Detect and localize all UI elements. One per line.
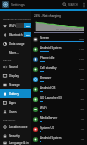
button[interactable]: Data usage (0, 39, 31, 48)
staticText: System UI (40, 126, 80, 130)
staticText: Users (9, 110, 17, 114)
staticText: Display (9, 74, 19, 78)
staticText: Phone idle (40, 56, 79, 60)
staticText: 12% (79, 57, 84, 60)
staticText: Apps (9, 101, 16, 105)
staticText: Browser (40, 76, 80, 80)
staticText: 4% (80, 87, 84, 90)
staticText: 2% (80, 107, 84, 110)
staticText: ON (26, 33, 30, 36)
staticText: Security (9, 134, 20, 138)
button[interactable]: Language & in (0, 140, 31, 145)
staticText: 1% (80, 137, 84, 140)
staticText: 3% (80, 97, 84, 100)
staticText: Bluetooth (9, 33, 23, 37)
staticText: Settings (11, 2, 25, 7)
button[interactable]: Security (0, 131, 31, 140)
button[interactable]: SEARCH (61, 2, 79, 7)
staticText: Location acce (9, 125, 28, 129)
staticText: Wi-Fi (40, 106, 80, 110)
staticText: SEARCH (68, 3, 78, 7)
button[interactable]: Battery (0, 89, 31, 98)
button[interactable]: System UI (31, 124, 87, 134)
staticText: 10% (79, 67, 84, 70)
button[interactable]: Users (0, 107, 31, 116)
staticText: Screen (40, 36, 79, 40)
button[interactable]: Browser (31, 74, 87, 84)
staticText: Wi-Fi (9, 24, 16, 28)
button[interactable]: Sound (0, 62, 31, 71)
staticText: Sound (9, 65, 18, 69)
button[interactable]: Phone idle (31, 54, 87, 64)
staticText: 2h 13m 45s on battery (56, 27, 83, 30)
staticText: Cell standby (40, 66, 79, 70)
button[interactable]: Android OS (31, 84, 87, 94)
staticText: Battery (9, 92, 19, 96)
staticText: Storage (9, 83, 20, 87)
button[interactable]: Bluetooth (0, 30, 31, 39)
button[interactable]: Wi-Fi (0, 21, 31, 30)
button[interactable]: MediaServer (31, 114, 87, 124)
button[interactable]: Android System (31, 44, 87, 54)
button[interactable]: Location acce (0, 122, 31, 131)
button[interactable]: Screen (31, 34, 87, 44)
button[interactable]: Android System (31, 134, 87, 144)
button[interactable]: GO Launcher EX (31, 94, 87, 104)
button[interactable]: More... (0, 48, 31, 57)
staticText: DEVICE (3, 58, 12, 61)
staticText: 1% (80, 127, 84, 130)
button[interactable]: Apps (0, 98, 31, 107)
staticText: Android System (40, 136, 80, 140)
staticText: ON (26, 24, 30, 27)
staticText: PERSONAL (3, 118, 16, 121)
button[interactable]: Wi-Fi (31, 104, 87, 114)
staticText: Language & in (9, 141, 29, 145)
staticText: WIRELESS & NETWORKS (3, 17, 31, 20)
button[interactable]: Display (0, 71, 31, 80)
staticText: 24% - Not charging (34, 14, 61, 18)
staticText: MediaServer (40, 116, 80, 120)
button[interactable]: Cell standby (31, 64, 87, 74)
staticText: GO Launcher EX (40, 96, 80, 100)
staticText: 1% (80, 117, 84, 120)
button[interactable]: Settings (2, 1, 9, 8)
staticText: Android System (40, 46, 79, 50)
staticText: Data usage (9, 42, 25, 46)
button[interactable]: More options (82, 0, 86, 9)
staticText: 17% (79, 47, 84, 50)
staticText: 46% (79, 37, 84, 40)
staticText: More... (9, 51, 19, 55)
button[interactable]: Storage (0, 80, 31, 89)
staticText: Android OS (40, 86, 80, 90)
staticText: 6% (80, 77, 84, 80)
